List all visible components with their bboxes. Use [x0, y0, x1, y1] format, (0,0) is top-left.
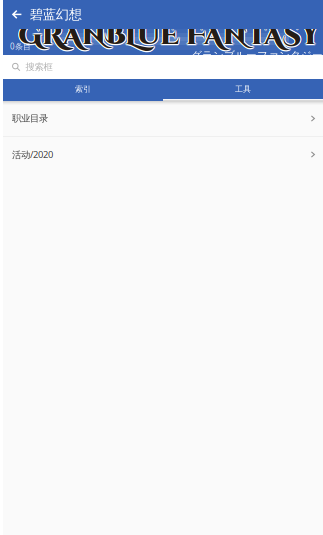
button[interactable]: 索引 [3, 79, 163, 99]
staticText: GRANBLUE FANTASY [20, 18, 321, 54]
staticText: 工具 [235, 84, 251, 94]
staticText: GRANBLUE FANTASY [19, 19, 320, 55]
staticText: GRANBLUE FANTASY [20, 19, 321, 55]
button[interactable]: 搜索框 [3, 55, 323, 79]
button[interactable]: 职业目录 [3, 101, 323, 136]
button[interactable]: 工具 [163, 79, 323, 99]
staticText: GRANBLUE FANTASY [18, 19, 319, 55]
staticText: 活动/2020 [12, 148, 53, 161]
staticText: 搜索框 [25, 61, 52, 73]
staticText: 0条目 [10, 41, 31, 52]
staticText: 职业目录 [12, 113, 48, 124]
staticText: GRANBLUE FANTASY [20, 17, 321, 53]
staticText: 索引 [75, 84, 91, 94]
staticText: GRANBLUE FANTASY [19, 17, 320, 53]
staticText: GRANBLUE FANTASY [19, 18, 320, 54]
staticText: 碧蓝幻想 [30, 6, 82, 23]
button[interactable]: 活动/2020 [3, 137, 323, 172]
staticText: GRANBLUE FANTASY [18, 17, 319, 53]
button[interactable]: Back [3, 0, 30, 29]
staticText: グランブルーファンタジー [191, 49, 323, 62]
staticText: GRANBLUE FANTASY [18, 18, 319, 54]
